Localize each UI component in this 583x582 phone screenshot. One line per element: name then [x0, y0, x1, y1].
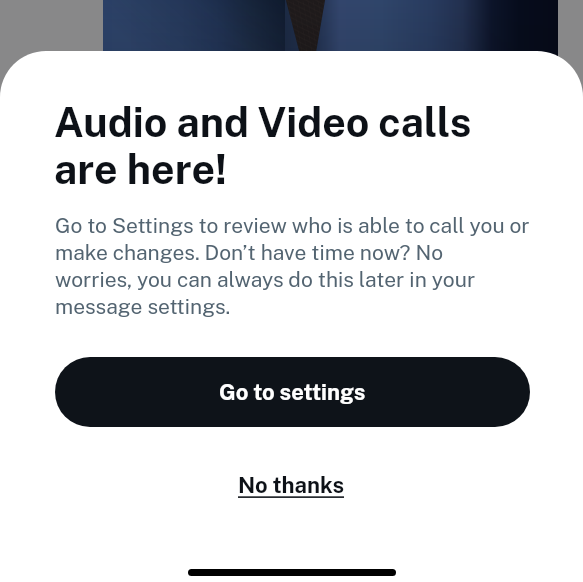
other: Home indicator	[188, 569, 396, 576]
staticText: No thanks	[238, 472, 345, 498]
button[interactable]: Go to settings	[55, 357, 530, 427]
staticText: Go to settings	[219, 379, 366, 405]
staticText: Go to Settings to review who is able to …	[55, 213, 530, 319]
staticText: Audio and Video calls are here!	[54, 98, 472, 193]
button[interactable]: No thanks	[214, 460, 369, 510]
